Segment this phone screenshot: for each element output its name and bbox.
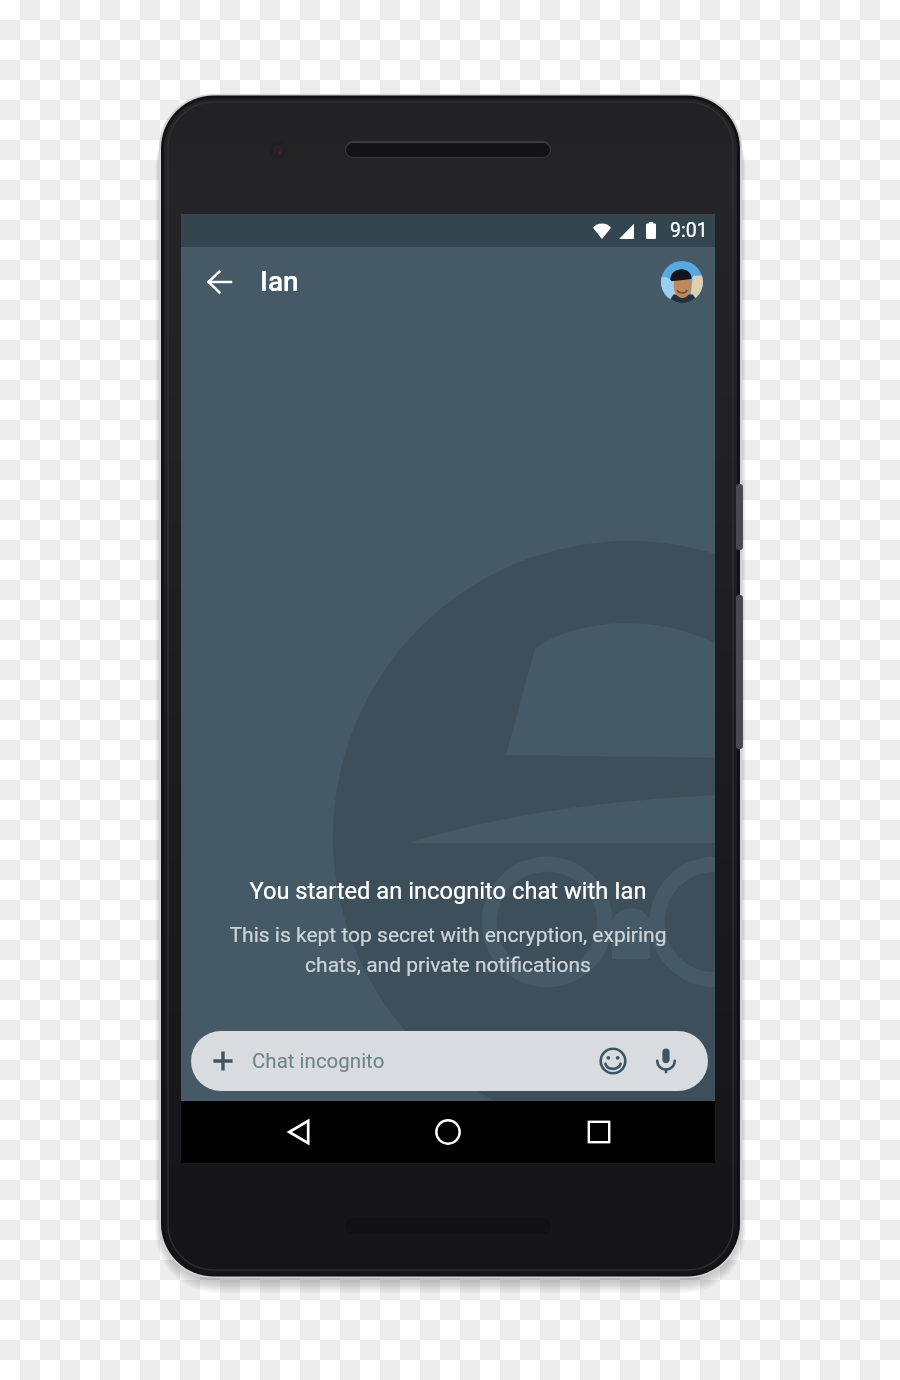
button[interactable]: Recent apps xyxy=(575,1108,623,1156)
button[interactable]: Home xyxy=(424,1108,472,1156)
button[interactable]: Back xyxy=(200,262,240,302)
staticText: You started an incognito chat with Ian xyxy=(249,877,647,905)
button[interactable]: Profile photo xyxy=(661,261,703,303)
button[interactable]: Add attachment xyxy=(210,1048,236,1074)
button[interactable]: Emoji xyxy=(595,1043,631,1079)
staticText: This is kept top secret with encryption,… xyxy=(203,923,693,977)
staticText: 9:01 xyxy=(670,219,708,242)
staticText: Chat incognito xyxy=(252,1049,595,1073)
staticText: Ian xyxy=(260,265,299,298)
button[interactable]: Voice message xyxy=(648,1043,684,1079)
button[interactable]: Back xyxy=(275,1108,323,1156)
button[interactable]: Add attachment xyxy=(191,1031,708,1091)
